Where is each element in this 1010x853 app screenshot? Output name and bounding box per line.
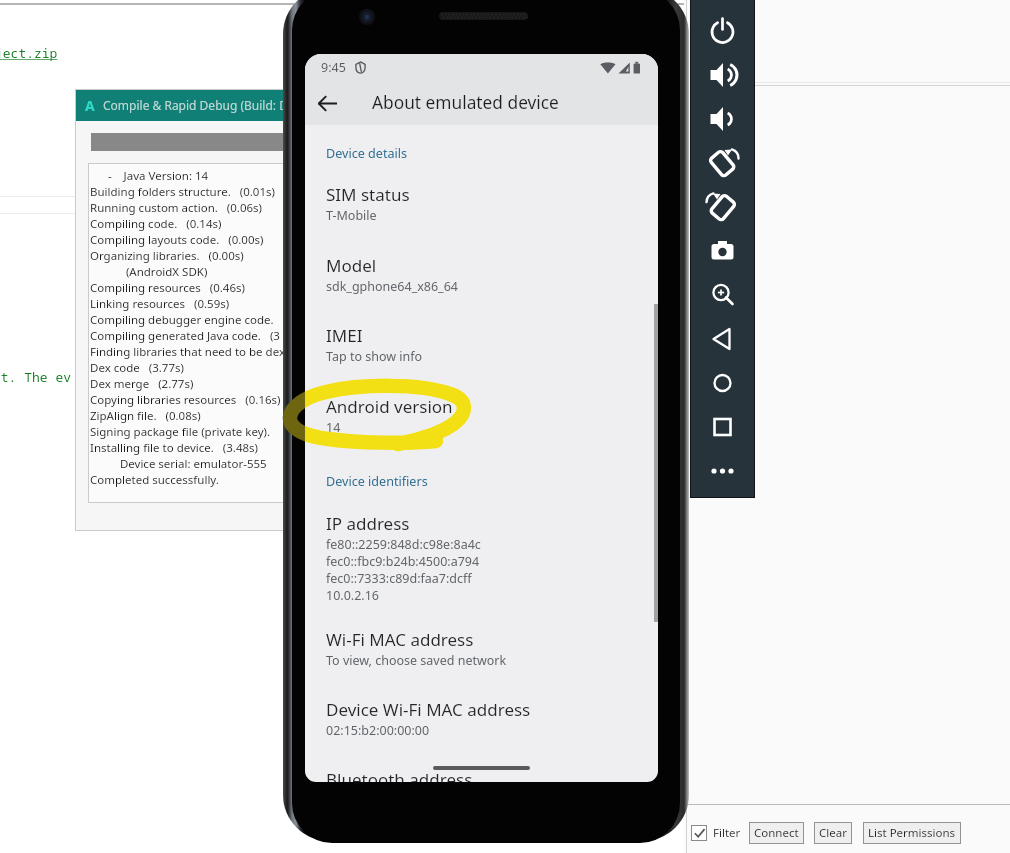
button[interactable]: Back [700, 317, 744, 361]
staticText: Completed successfully. [90, 472, 219, 488]
staticText: List Permissions [868, 825, 956, 841]
button[interactable]: Android version [305, 393, 658, 436]
button[interactable]: ject.zip [0, 44, 58, 62]
button[interactable]: Rotate right [700, 185, 744, 229]
button[interactable]: Clear [814, 822, 852, 844]
button[interactable]: Volume up [700, 53, 744, 97]
staticText: Tap to show info [326, 348, 423, 365]
staticText: Compile & Rapid Debug (Build: De [103, 97, 295, 113]
staticText: Running custom action. (0.06s) [90, 200, 263, 216]
staticText: SIM status [326, 183, 410, 206]
button[interactable]: Connect [749, 822, 804, 844]
button[interactable]: SIM status [305, 181, 658, 224]
staticText: 02:15:b2:00:00:00 [326, 722, 430, 739]
staticText: Device details [326, 145, 408, 162]
button[interactable]: Zoom [700, 273, 744, 317]
staticText: 9:45 [321, 59, 346, 76]
button[interactable]: Wi-Fi MAC address [305, 626, 658, 669]
button[interactable]: Take screenshot [700, 229, 744, 273]
staticText: Device serial: emulator-555 [90, 456, 267, 472]
button[interactable]: List Permissions [863, 822, 961, 844]
staticText: Dex merge (2.77s) [90, 376, 194, 392]
button[interactable]: More [700, 449, 744, 493]
staticText: Building folders structure. (0.01s) [90, 184, 275, 200]
button[interactable]: Device details [305, 142, 658, 164]
staticText: Bluetooth address [326, 768, 473, 782]
staticText: About emulated device [372, 91, 559, 115]
button[interactable]: Volume down [700, 97, 744, 141]
staticText: Connect [754, 825, 799, 841]
staticText: 10.0.2.16 [326, 587, 379, 604]
staticText: fec0::7333:c89d:faa7:dcff [326, 570, 472, 587]
staticText: Android version [326, 395, 453, 418]
staticText: Compiling debugger engine code. [90, 312, 274, 328]
staticText: - Java Version: 14 [90, 168, 209, 184]
button[interactable]: Bluetooth address [305, 768, 658, 782]
staticText: To view, choose saved network [326, 652, 507, 669]
staticText: Compiling layouts code. (0.00s) [90, 232, 264, 248]
staticText: Compiling resources (0.46s) [90, 280, 245, 296]
staticText: fec0::fbc9:b24b:4500:a794 [326, 553, 480, 570]
staticText: Organizing libraries. (0.00s) [90, 248, 244, 264]
staticText: Copying libraries resources (0.16s) [90, 392, 281, 408]
staticText: ZipAlign file. (0.08s) [90, 408, 201, 424]
staticText: IMEI [326, 324, 363, 347]
button[interactable]: Device identifiers [305, 470, 658, 492]
button[interactable]: Overview [700, 405, 744, 449]
staticText: Compiling generated Java code. (3 [90, 328, 280, 344]
staticText: Wi-Fi MAC address [326, 628, 474, 651]
staticText: Compiling code. (0.14s) [90, 216, 222, 232]
staticText: Model [326, 254, 377, 277]
button[interactable]: Home [700, 361, 744, 405]
button[interactable]: IMEI [305, 322, 658, 365]
staticText: (AndroidX SDK) [90, 264, 208, 280]
staticText: IP address [326, 512, 410, 535]
staticText: sdk_gphone64_x86_64 [326, 278, 458, 295]
staticText: Dex code (3.77s) [90, 360, 184, 376]
staticText: 14 [326, 419, 341, 436]
staticText: Device identifiers [326, 473, 428, 490]
staticText: Installing file to device. (3.48s) [90, 440, 259, 456]
staticText: Filter [713, 825, 741, 841]
staticText: A [85, 96, 95, 115]
staticText: Finding libraries that need to be dex [90, 344, 285, 360]
button[interactable]: Rotate left [700, 141, 744, 185]
button[interactable]: IP address [305, 510, 658, 604]
staticText: Device Wi-Fi MAC address [326, 698, 531, 721]
staticText: Clear [819, 825, 847, 841]
button[interactable]: Device Wi-Fi MAC address [305, 696, 658, 739]
staticText: fe80::2259:848d:c98e:8a4c [326, 536, 481, 553]
button[interactable]: Model [305, 252, 658, 295]
staticText: Linking resources (0.59s) [90, 296, 230, 312]
staticText: T-Mobile [326, 207, 377, 224]
button[interactable]: Back [305, 81, 349, 125]
button[interactable]: Filter [691, 823, 741, 843]
staticText: tt. The ev [0, 368, 72, 386]
button[interactable]: Power [700, 9, 744, 53]
staticText: Signing package file (private key). [90, 424, 271, 440]
